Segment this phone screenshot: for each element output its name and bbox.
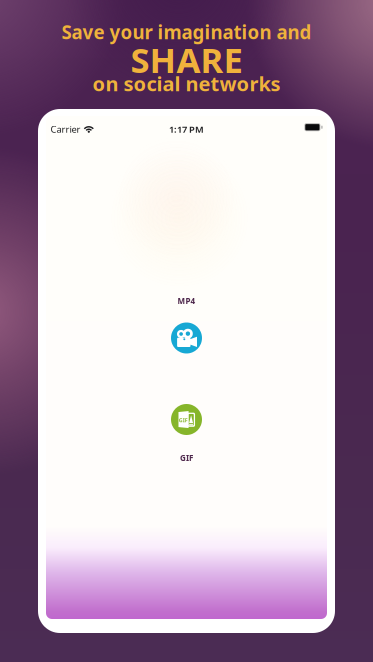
button[interactable]: MP4 bbox=[171, 295, 202, 353]
staticText: SHARE bbox=[130, 36, 242, 82]
button[interactable]: GIF bbox=[171, 404, 202, 463]
staticText: on social networks bbox=[92, 70, 280, 97]
staticText: Carrier bbox=[50, 123, 80, 135]
staticText: GIF bbox=[179, 417, 188, 424]
staticText: 1:17 PM bbox=[169, 123, 204, 135]
staticText: GIF bbox=[180, 453, 193, 463]
staticText: MP4 bbox=[177, 296, 195, 306]
staticText: Save your imagination and bbox=[61, 20, 311, 44]
